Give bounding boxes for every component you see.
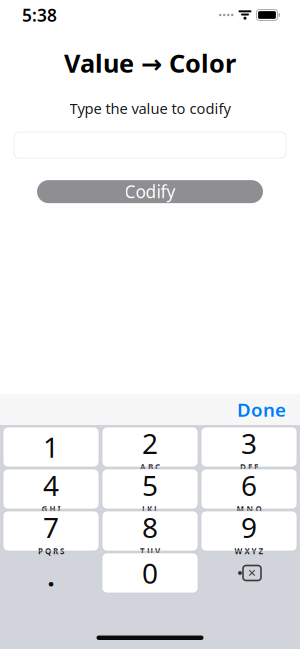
button[interactable]: Decimal point	[3, 553, 99, 593]
staticText: Done	[237, 397, 286, 422]
staticText: .	[47, 555, 55, 594]
staticText: 6	[241, 467, 257, 504]
staticText: 1	[43, 428, 59, 466]
staticText: G H I	[41, 504, 60, 514]
button[interactable]: 0	[102, 553, 198, 593]
staticText: 5	[142, 467, 158, 504]
button[interactable]: Delete	[201, 553, 297, 593]
staticText: 4	[43, 467, 59, 504]
staticText: Value → Color	[64, 46, 236, 80]
staticText: Codify	[124, 180, 175, 203]
button[interactable]: 7	[3, 511, 99, 551]
button[interactable]: 6	[201, 469, 297, 509]
button[interactable]: 8	[102, 511, 198, 551]
button[interactable]: 5	[102, 469, 198, 509]
staticText: 0	[142, 554, 158, 592]
staticText: 7	[43, 509, 59, 546]
staticText: W X Y Z	[234, 546, 263, 556]
button[interactable]: Done	[223, 390, 300, 429]
button[interactable]: 2	[102, 427, 198, 467]
staticText: D E F	[240, 462, 258, 472]
button[interactable]: 9	[201, 511, 297, 551]
staticText: 5:38	[22, 3, 57, 26]
staticText: T U V	[140, 546, 160, 556]
staticText: J K L	[142, 504, 158, 514]
staticText: M N O	[236, 504, 261, 514]
staticText: P Q R S	[38, 546, 64, 556]
staticText: A B C	[140, 462, 160, 472]
staticText: 8	[142, 509, 158, 546]
button[interactable]: 4	[3, 469, 99, 509]
button[interactable]: 3	[201, 427, 297, 467]
staticText: 9	[241, 509, 257, 546]
button[interactable]: 1	[3, 427, 99, 467]
button[interactable]: Codify	[37, 180, 263, 203]
staticText: Type the value to codify	[69, 99, 230, 118]
staticText: ✕	[247, 567, 256, 579]
staticText: 3	[241, 425, 257, 462]
staticText: 2	[142, 425, 158, 462]
